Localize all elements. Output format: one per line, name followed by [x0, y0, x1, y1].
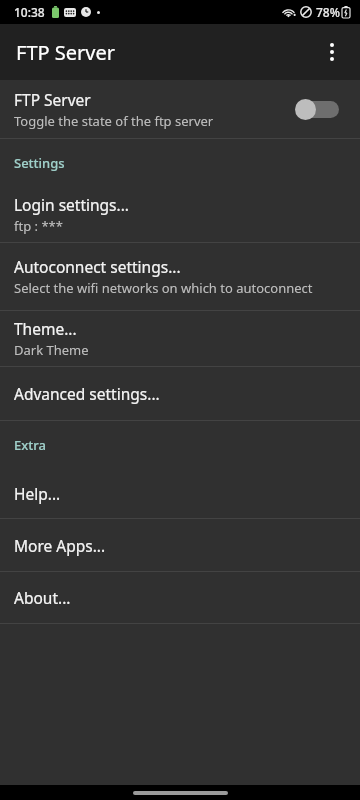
button[interactable]: Autoconnect settings... [0, 243, 360, 310]
staticText: FTP Server [16, 39, 116, 66]
staticText: Theme... [14, 318, 77, 339]
button[interactable]: Theme... [0, 311, 360, 366]
staticText: More Apps... [14, 535, 106, 556]
button[interactable]: Advanced settings... [0, 367, 360, 420]
staticText: 10:38 [14, 4, 45, 20]
button[interactable]: Toggle FTP server [294, 94, 346, 124]
button[interactable]: Help... [0, 468, 360, 518]
staticText: Help... [14, 483, 61, 504]
button[interactable]: FTP Server [0, 80, 360, 138]
staticText: Autoconnect settings... [14, 256, 181, 277]
staticText: FTP Server [14, 89, 91, 110]
staticText: Extra [14, 436, 46, 454]
button[interactable]: About... [0, 572, 360, 623]
staticText: Toggle the state of the ftp server [14, 112, 214, 130]
button[interactable]: More Apps... [0, 519, 360, 571]
staticText: ftp : *** [14, 217, 63, 235]
staticText: Dark Theme [14, 341, 89, 359]
staticText: Settings [14, 154, 65, 172]
button[interactable]: Login settings... [0, 186, 360, 242]
staticText: Select the wifi networks on which to aut… [14, 279, 313, 297]
staticText: About... [14, 587, 71, 608]
staticText: 78% [316, 4, 340, 20]
button[interactable]: More options [312, 32, 352, 72]
staticText: Advanced settings... [14, 383, 160, 404]
staticText: Login settings... [14, 194, 129, 215]
